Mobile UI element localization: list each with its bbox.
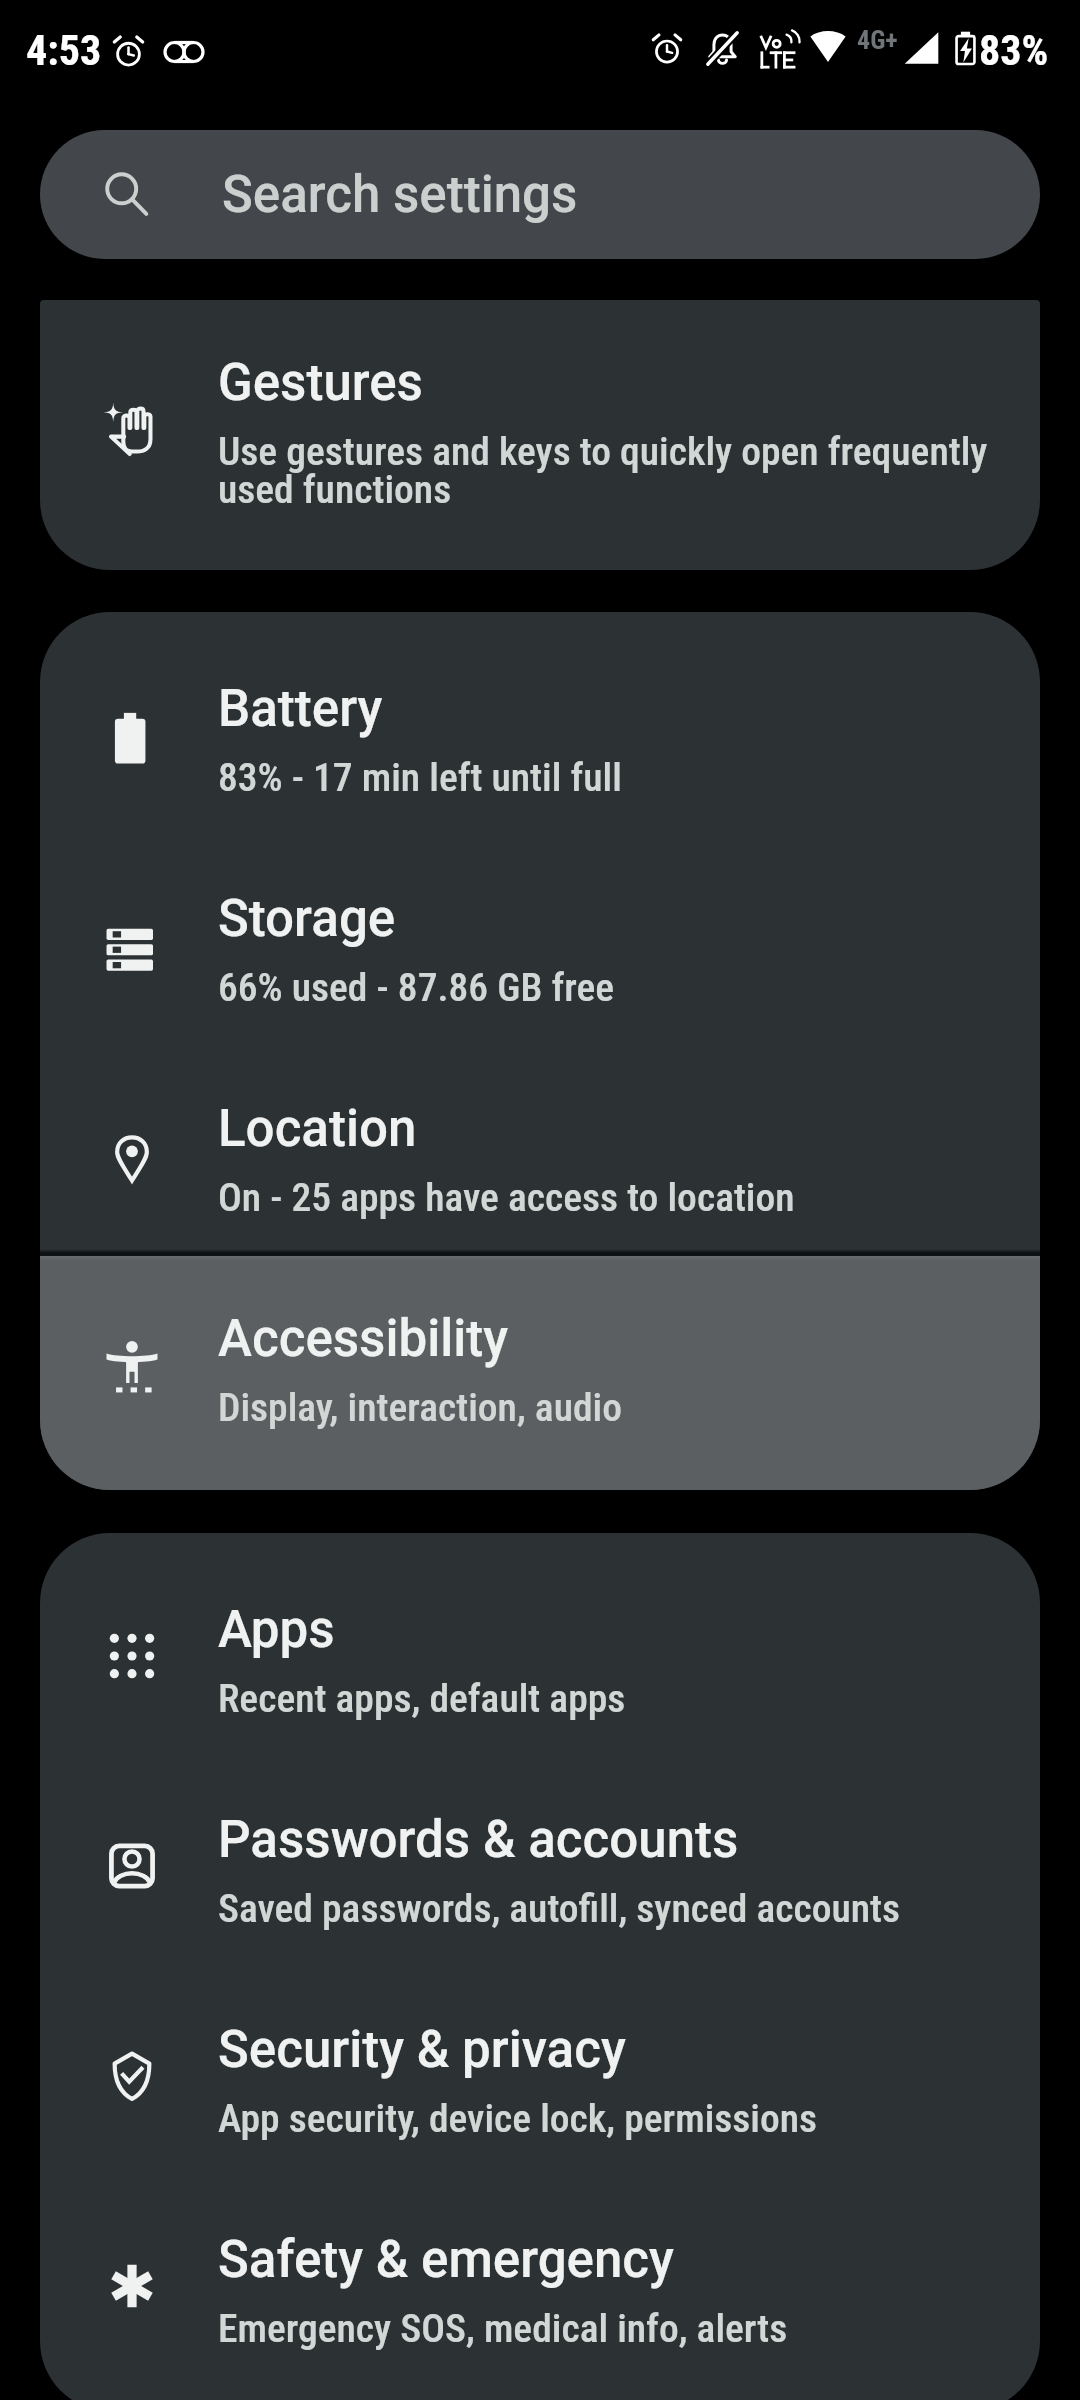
button[interactable]: Battery	[40, 612, 1040, 822]
staticText: Accessibility	[218, 1309, 509, 1369]
staticText: Emergency SOS, medical info, alerts	[218, 2305, 788, 2351]
button[interactable]: Passwords & accounts	[40, 1743, 1040, 1953]
staticText: Use gestures and keys to quickly open fr…	[218, 428, 1000, 513]
button[interactable]: Accessibility	[40, 1242, 1040, 1490]
staticText: Safety & emergency	[218, 2230, 674, 2290]
staticText: Saved passwords, autofill, synced accoun…	[218, 1885, 901, 1931]
staticText: 83%	[979, 26, 1049, 75]
staticText: On - 25 apps have access to location	[218, 1174, 795, 1220]
button[interactable]: Safety & emergency	[40, 2163, 1040, 2400]
staticText: 4:53	[26, 26, 102, 75]
staticText: App security, device lock, permissions	[218, 2095, 818, 2141]
staticText: Location	[218, 1099, 417, 1159]
staticText: Storage	[218, 889, 396, 949]
staticText: 83% - 17 min left until full	[218, 754, 622, 800]
staticText: Battery	[218, 679, 383, 739]
button[interactable]: Storage	[40, 822, 1040, 1032]
button[interactable]: Search settings	[40, 130, 1040, 259]
button[interactable]: Location	[40, 1032, 1040, 1242]
button[interactable]: Apps	[40, 1533, 1040, 1743]
staticText: Search settings	[222, 165, 578, 225]
staticText: Recent apps, default apps	[218, 1675, 626, 1721]
button[interactable]: Security & privacy	[40, 1953, 1040, 2163]
staticText: 66% used - 87.86 GB free	[218, 964, 615, 1010]
staticText: 4G+	[857, 25, 898, 55]
button[interactable]: Gestures	[40, 300, 1040, 570]
staticText: Security & privacy	[218, 2020, 626, 2080]
staticText: Passwords & accounts	[218, 1810, 739, 1870]
staticText: Gestures	[218, 353, 423, 413]
staticText: Apps	[218, 1600, 335, 1660]
staticText: Display, interaction, audio	[218, 1384, 622, 1430]
